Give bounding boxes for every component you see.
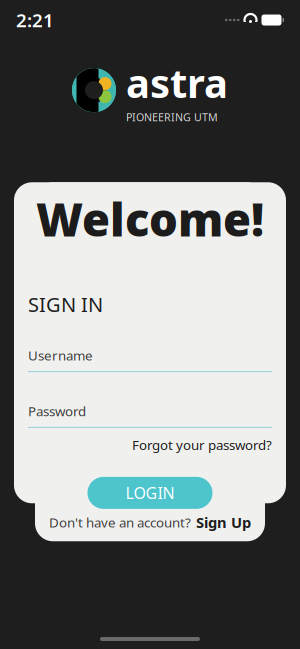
staticText: Welcome! [36, 189, 264, 249]
staticText: astra [126, 56, 228, 109]
staticText: Password [28, 402, 86, 420]
button[interactable]: Forgot your password? [28, 435, 272, 455]
staticText: 2:21 [16, 8, 54, 32]
button[interactable]: Don't have an account? [35, 503, 265, 541]
staticText: Don't have an account? [49, 513, 191, 531]
staticText: PIONEERING UTM [126, 110, 218, 124]
staticText: Username [28, 346, 93, 364]
staticText: Forgot your password? [132, 436, 272, 454]
staticText: Sign Up [196, 512, 251, 532]
button[interactable]: LOGIN [87, 477, 212, 509]
staticText: LOGIN [125, 482, 174, 503]
staticText: SIGN IN [28, 291, 103, 317]
